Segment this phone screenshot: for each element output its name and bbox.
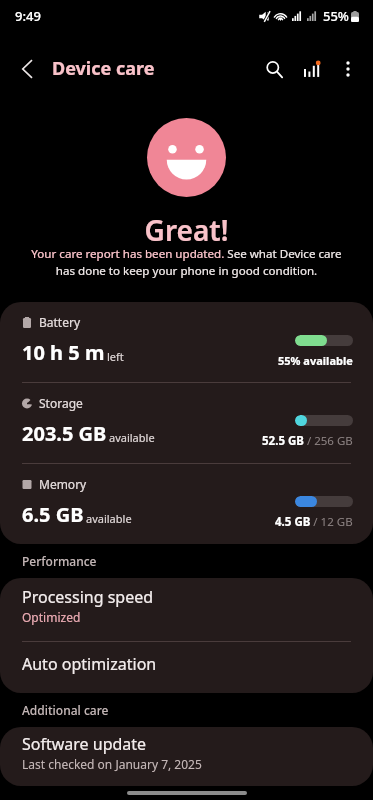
staticText: Your care report has been updated. See w… [24, 246, 349, 279]
button[interactable]: Usage statistics [293, 51, 329, 87]
button[interactable]: Storage [0, 383, 373, 463]
staticText: left [107, 349, 124, 364]
staticText: Device care [52, 56, 155, 81]
staticText: available [86, 511, 132, 526]
staticText: Performance [22, 553, 97, 569]
staticText: 55% available [278, 353, 353, 368]
staticText: 4.5 GB / 12 GB [275, 514, 353, 530]
staticText: Storage [39, 395, 83, 411]
staticText: 10 h 5 m [22, 339, 105, 366]
staticText: 52.5 GB / 256 GB [262, 433, 353, 449]
button[interactable]: Search [256, 51, 292, 87]
staticText: Software update [22, 733, 147, 755]
staticText: Last checked on January 7, 2025 [22, 756, 202, 772]
staticText: Great! [0, 211, 373, 249]
button[interactable]: Auto optimization [0, 642, 373, 693]
staticText: 203.5 GB [22, 420, 107, 447]
staticText: 6.5 GB [22, 501, 84, 528]
button[interactable]: Processing speed [0, 578, 373, 641]
staticText: Additional care [22, 702, 109, 718]
staticText: Memory [39, 476, 87, 492]
staticText: 9:49 [15, 7, 41, 25]
staticText: Optimized [22, 609, 81, 625]
staticText: Battery [39, 314, 81, 330]
button[interactable]: Software update [0, 727, 373, 786]
staticText: available [109, 430, 155, 445]
staticText: Auto optimization [22, 653, 157, 675]
button[interactable]: Memory [0, 464, 373, 544]
button[interactable]: More options [330, 51, 366, 87]
staticText: Processing speed [22, 586, 154, 608]
button[interactable]: Back [0, 47, 52, 91]
staticText: 55% [323, 7, 349, 25]
button[interactable]: Battery [0, 302, 373, 382]
